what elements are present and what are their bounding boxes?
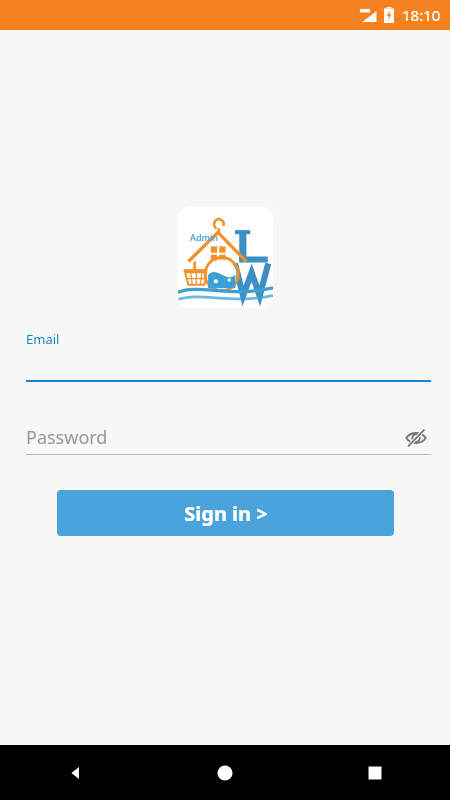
button[interactable]: Sign in > xyxy=(57,490,394,536)
staticText: Password xyxy=(26,425,108,450)
button[interactable]: Toggle password visibility xyxy=(401,423,431,453)
button[interactable]: Password xyxy=(0,423,450,455)
button[interactable]: Email xyxy=(0,330,450,382)
button[interactable]: Home xyxy=(150,745,300,800)
staticText: Email xyxy=(26,330,60,348)
button[interactable]: Back xyxy=(0,745,150,800)
staticText: Admin xyxy=(190,231,219,243)
staticText: Sign in > xyxy=(184,500,268,527)
button[interactable]: Recent apps xyxy=(300,745,450,800)
staticText: 18:10 xyxy=(402,5,441,25)
